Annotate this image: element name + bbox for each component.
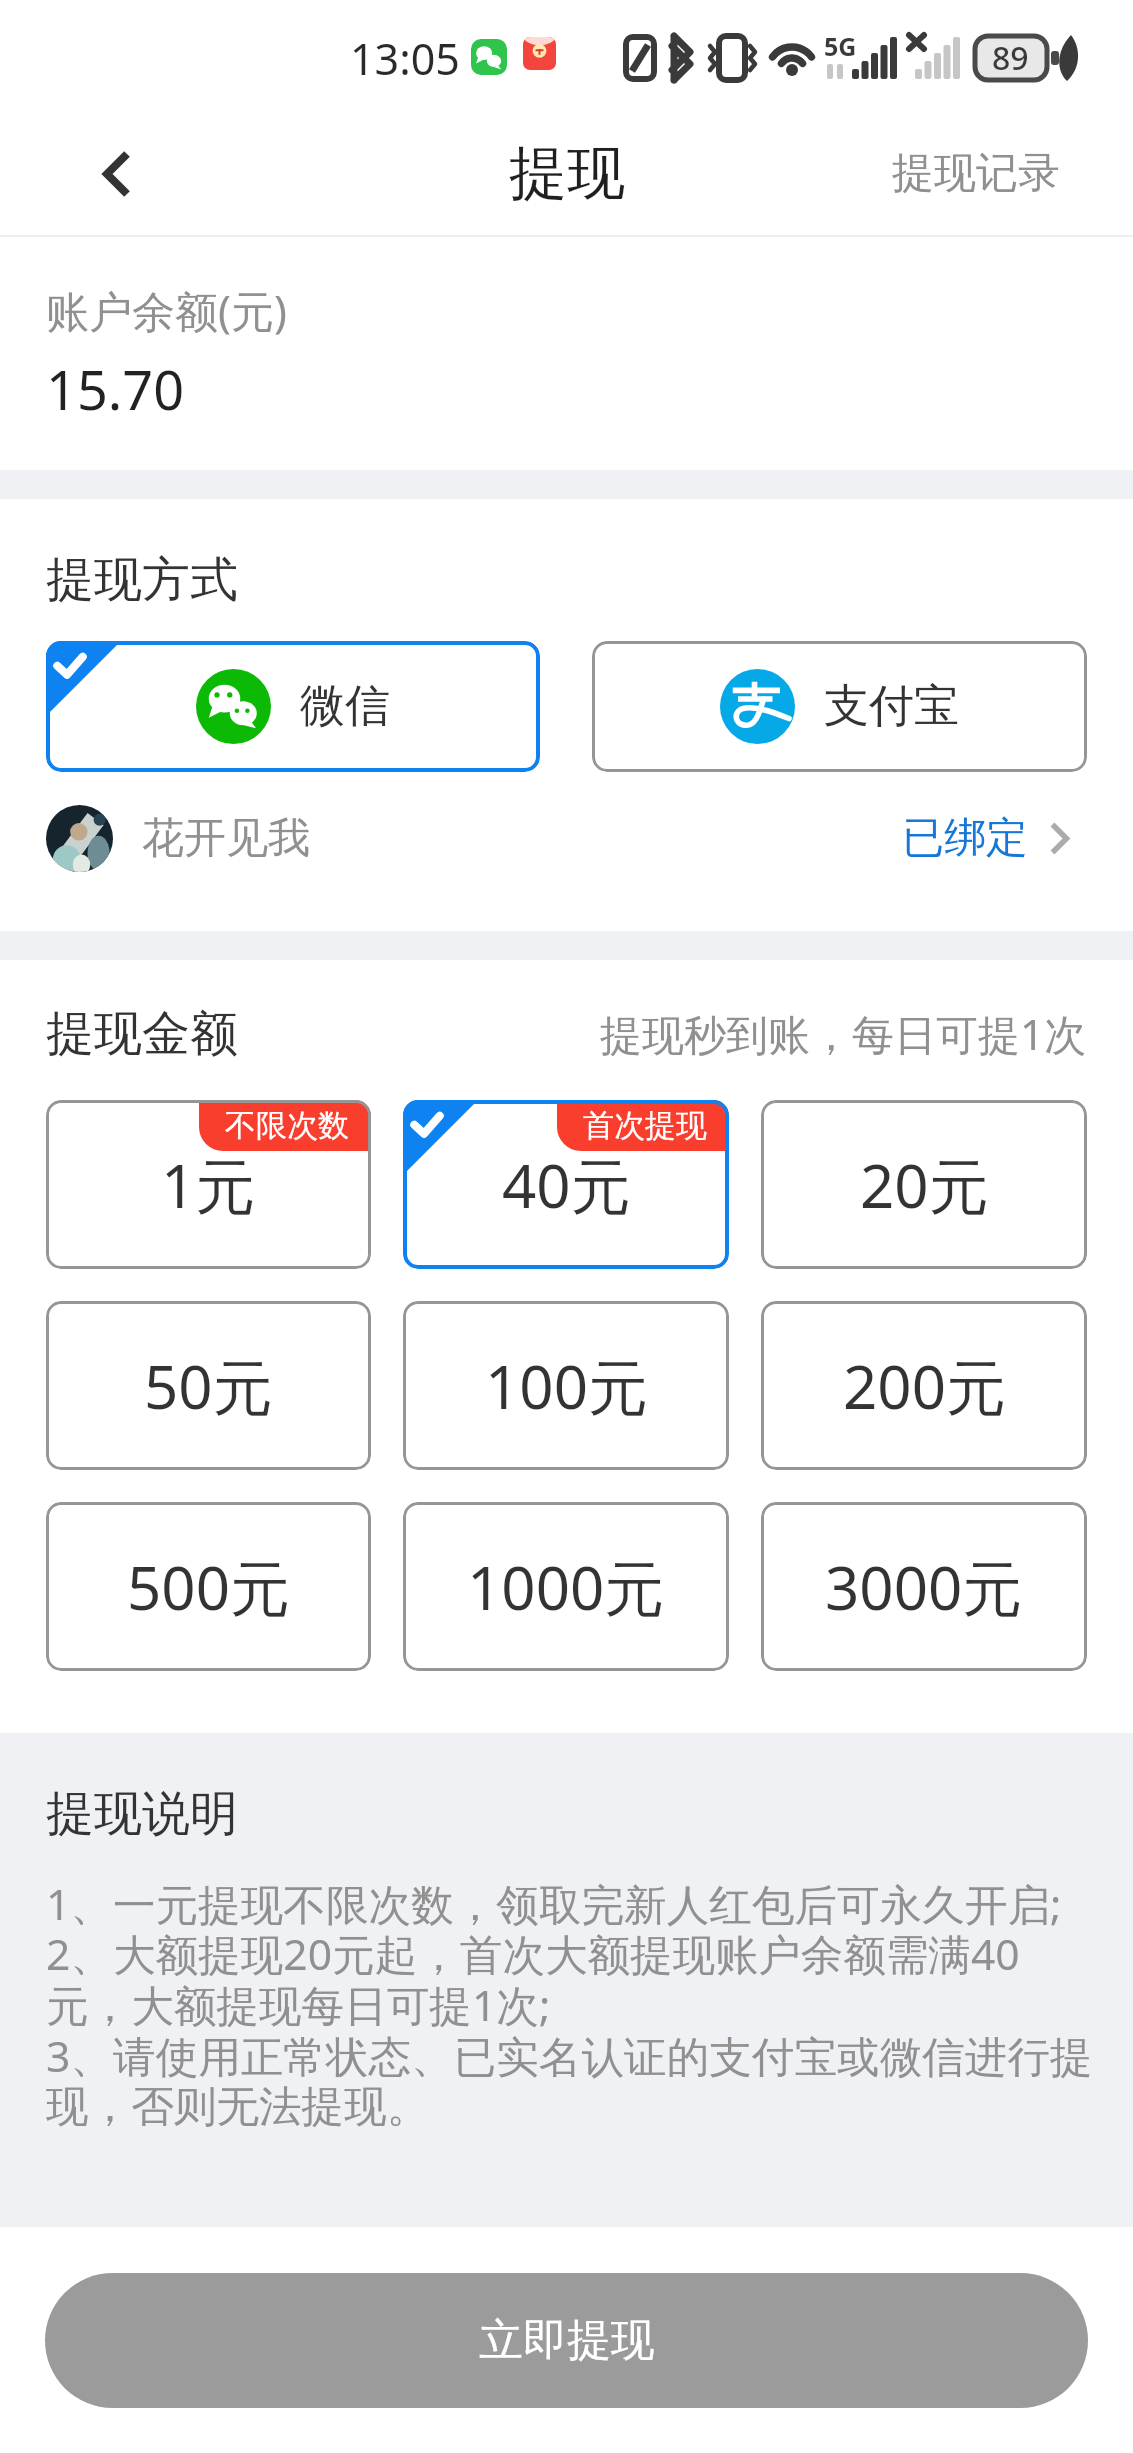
- button[interactable]: 首次提现: [403, 1100, 729, 1269]
- button[interactable]: 20元: [761, 1100, 1087, 1269]
- staticText: 200元: [843, 1345, 1006, 1427]
- button[interactable]: 提现记录: [892, 147, 1060, 200]
- button[interactable]: 50元: [46, 1301, 371, 1470]
- staticText: 13:05: [350, 29, 460, 88]
- staticText: 15.70: [46, 352, 185, 426]
- staticText: 1元: [161, 1144, 256, 1226]
- staticText: 40元: [502, 1144, 631, 1226]
- staticText: 账户余额(元): [46, 281, 287, 340]
- button[interactable]: 200元: [761, 1301, 1087, 1470]
- staticText: 已绑定: [902, 812, 1028, 865]
- staticText: 提现记录: [892, 147, 1060, 200]
- button[interactable]: 花开见我: [46, 798, 1069, 878]
- staticText: 提现秒到账，每日可提1次: [600, 1005, 1087, 1062]
- button[interactable]: 3000元: [761, 1502, 1087, 1671]
- staticText: 首次提现: [583, 1106, 707, 1145]
- staticText: 20元: [860, 1144, 989, 1226]
- staticText: 3000元: [825, 1546, 1023, 1628]
- staticText: 花开见我: [142, 812, 310, 865]
- button[interactable]: 不限次数: [46, 1100, 371, 1269]
- button[interactable]: 100元: [403, 1301, 729, 1470]
- button[interactable]: 500元: [46, 1502, 371, 1671]
- staticText: 1、一元提现不限次数，领取完新人红包后可永久开启; 2、大额提现20元起，首次大…: [46, 1874, 1093, 2134]
- staticText: 50元: [144, 1345, 273, 1427]
- staticText: 100元: [485, 1345, 648, 1427]
- button[interactable]: 立即提现: [45, 2273, 1088, 2408]
- button[interactable]: 微信: [46, 641, 540, 772]
- staticText: 提现说明: [46, 1784, 238, 1844]
- staticText: 不限次数: [225, 1106, 349, 1145]
- staticText: 提现方式: [46, 550, 238, 610]
- staticText: 89: [992, 36, 1029, 80]
- staticText: 1000元: [467, 1546, 665, 1628]
- button[interactable]: 1000元: [403, 1502, 729, 1671]
- staticText: 提现金额: [46, 1004, 238, 1064]
- staticText: 提现: [509, 137, 625, 210]
- staticText: 支付宝: [824, 678, 959, 735]
- staticText: 500元: [127, 1546, 290, 1628]
- staticText: 5G: [824, 29, 857, 63]
- button[interactable]: 支付宝: [592, 641, 1087, 772]
- button[interactable]: Back: [76, 119, 186, 229]
- staticText: 微信: [300, 678, 390, 735]
- staticText: 立即提现: [479, 2313, 655, 2368]
